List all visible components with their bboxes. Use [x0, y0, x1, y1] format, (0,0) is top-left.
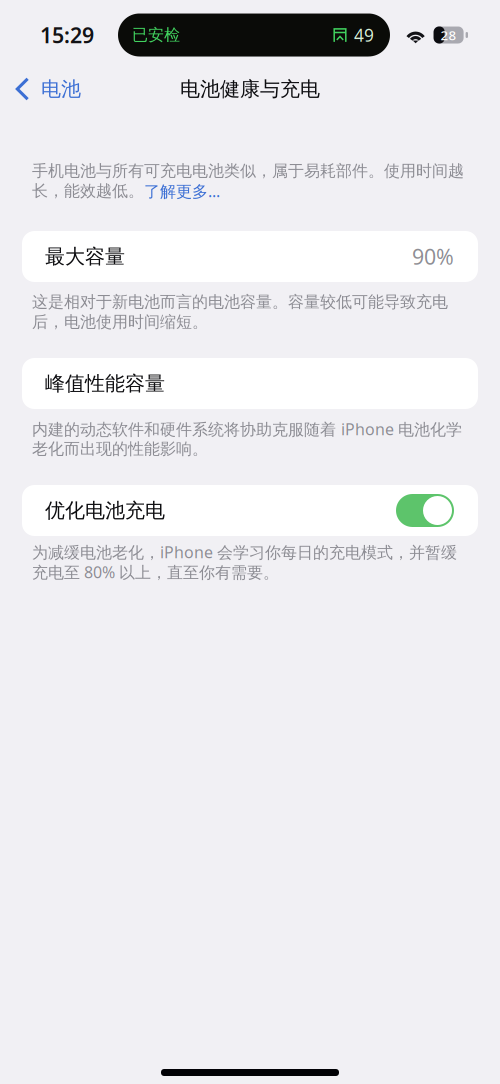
- staticText: 峰值性能容量: [45, 371, 165, 396]
- staticText: 90%: [412, 242, 454, 271]
- staticText: 最大容量: [45, 244, 125, 269]
- staticText: 后，电池使用时间缩短。: [32, 312, 208, 332]
- button[interactable]: 优化电池充电: [396, 494, 454, 527]
- staticText: 49: [354, 23, 374, 46]
- button[interactable]: 优化电池充电: [0, 485, 500, 536]
- staticText: 内建的动态软件和硬件系统将协助克服随着 iPhone 电池化学: [32, 418, 462, 440]
- staticText: 15:29: [40, 21, 94, 49]
- staticText: 手机电池与所有可充电电池类似，属于易耗部件。使用时间越: [32, 161, 464, 181]
- button[interactable]: 电池: [0, 70, 93, 108]
- staticText: 已安检: [132, 25, 180, 45]
- staticText: 电池健康与充电: [180, 77, 320, 101]
- button[interactable]: 最大容量: [0, 231, 500, 282]
- staticText: 电池: [41, 77, 81, 101]
- staticText: 这是相对于新电池而言的电池容量。容量较低可能导致充电: [32, 292, 448, 312]
- staticText: 为减缓电池老化，iPhone 会学习你每日的充电模式，并暂缓: [32, 541, 457, 563]
- staticText: 长，能效越低。: [32, 181, 144, 201]
- staticText: 优化电池充电: [45, 498, 165, 523]
- button[interactable]: 了解更多...: [144, 180, 220, 202]
- staticText: 老化而出现的性能影响。: [32, 439, 208, 459]
- staticText: 了解更多...: [144, 180, 220, 202]
- staticText: 充电至 80% 以上，直至你有需要。: [32, 561, 279, 583]
- staticText: 28: [441, 26, 457, 44]
- button[interactable]: 峰值性能容量: [0, 358, 500, 409]
